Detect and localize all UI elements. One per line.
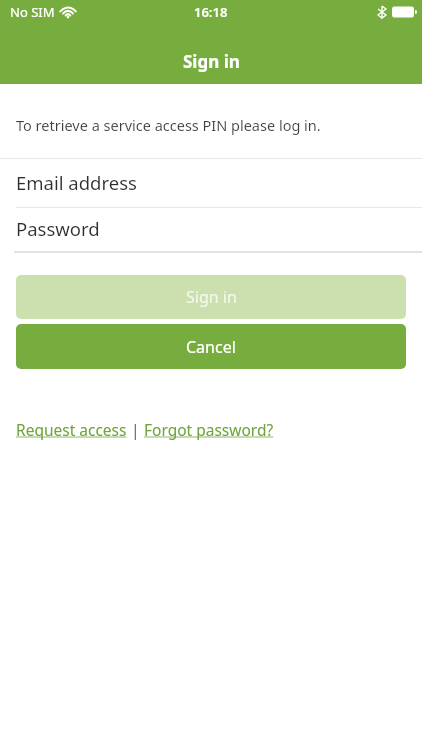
button[interactable]: Request access xyxy=(16,419,127,440)
button[interactable]: Forgot password? xyxy=(144,419,274,440)
button[interactable]: Cancel xyxy=(16,324,406,369)
staticText: 16:18 xyxy=(194,3,228,21)
staticText: | xyxy=(131,419,140,440)
staticText: Sign in xyxy=(186,286,237,308)
staticText: Cancel xyxy=(186,336,236,358)
button[interactable]: Sign in xyxy=(16,275,406,319)
button[interactable]: Password xyxy=(0,208,422,251)
button[interactable]: Email address xyxy=(0,159,422,207)
staticText: No SIM xyxy=(10,3,55,21)
staticText: To retrieve a service access PIN please … xyxy=(16,115,321,135)
staticText: Sign in xyxy=(183,50,240,73)
staticText: Email address xyxy=(16,170,137,195)
staticText: Password xyxy=(16,216,100,241)
